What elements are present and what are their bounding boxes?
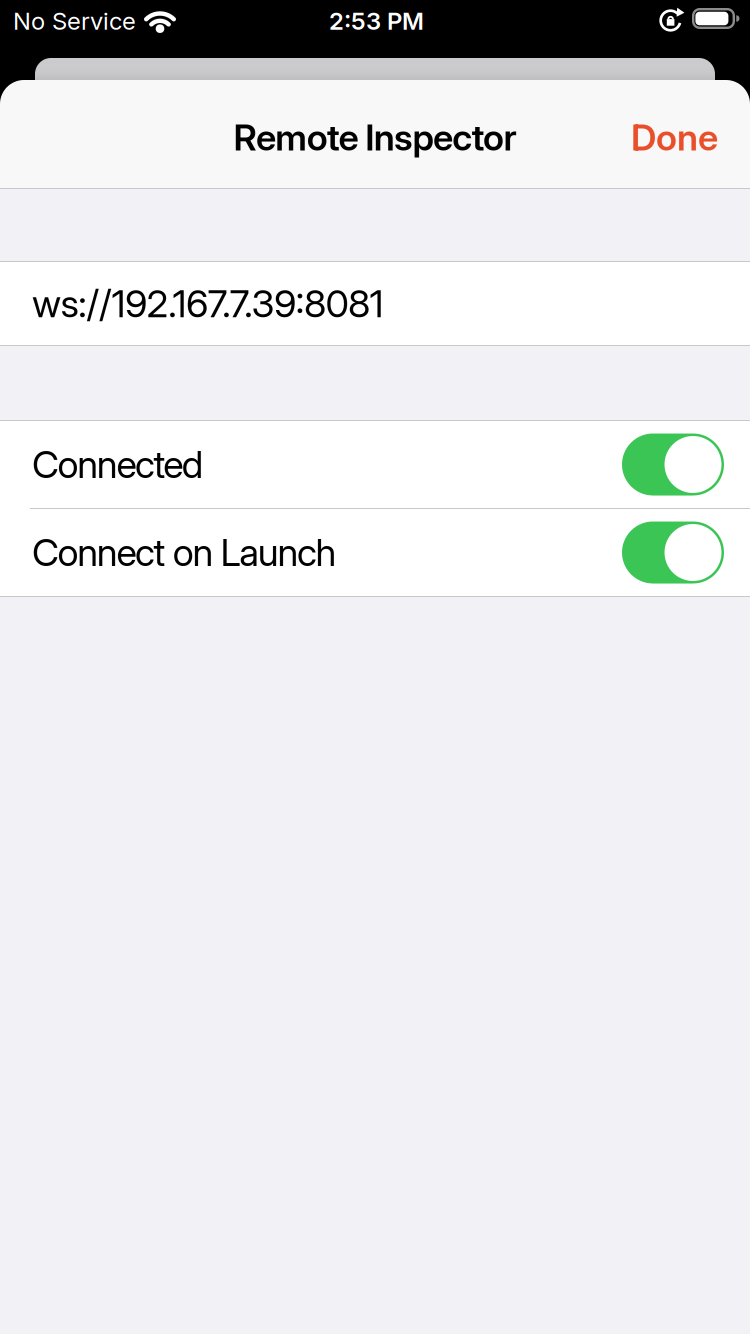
staticText: No Service [13,6,136,35]
button[interactable]: Connect on Launch [622,521,724,583]
staticText: ws://192.167.7.39:8081 [32,280,383,326]
button[interactable]: Connected [622,433,724,495]
staticText: Done [631,116,718,159]
button[interactable]: ws://192.167.7.39:8081 [0,262,750,345]
staticText: 2:53 PM [329,6,424,35]
staticText: Remote Inspector [233,116,516,159]
staticText: Connect on Launch [32,530,337,575]
staticText: Connected [32,442,203,487]
button[interactable]: Done [631,109,750,159]
